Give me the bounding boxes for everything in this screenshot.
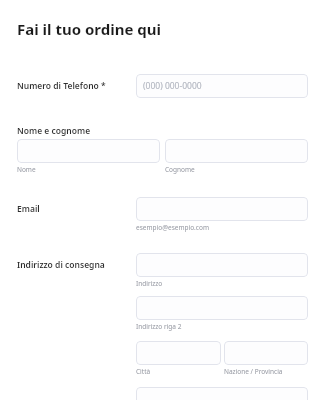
button[interactable] — [136, 296, 308, 320]
button[interactable] — [136, 341, 221, 365]
staticText: Nazione / Provincia — [224, 367, 283, 376]
staticText: Numero di Telefono * — [17, 80, 106, 92]
staticText: (000) 000-0000 — [143, 80, 202, 92]
staticText: Nome — [17, 165, 36, 174]
button[interactable] — [136, 253, 308, 277]
staticText: Città — [136, 367, 151, 376]
button[interactable] — [224, 341, 308, 365]
button[interactable] — [17, 139, 160, 163]
button[interactable] — [136, 387, 308, 400]
staticText: esempio@esempio.com — [136, 223, 209, 232]
button[interactable] — [136, 197, 308, 221]
staticText: Nome e cognome — [17, 125, 91, 137]
staticText: Indirizzo di consegna — [17, 259, 105, 271]
staticText: Email — [17, 203, 40, 215]
staticText: Indirizzo — [136, 279, 163, 288]
staticText: Cognome — [165, 165, 195, 174]
staticText: Indirizzo riga 2 — [136, 322, 182, 331]
staticText: Fai il tuo ordine qui — [17, 19, 162, 39]
button[interactable]: (000) 000-0000 — [136, 74, 308, 98]
button[interactable] — [165, 139, 308, 163]
